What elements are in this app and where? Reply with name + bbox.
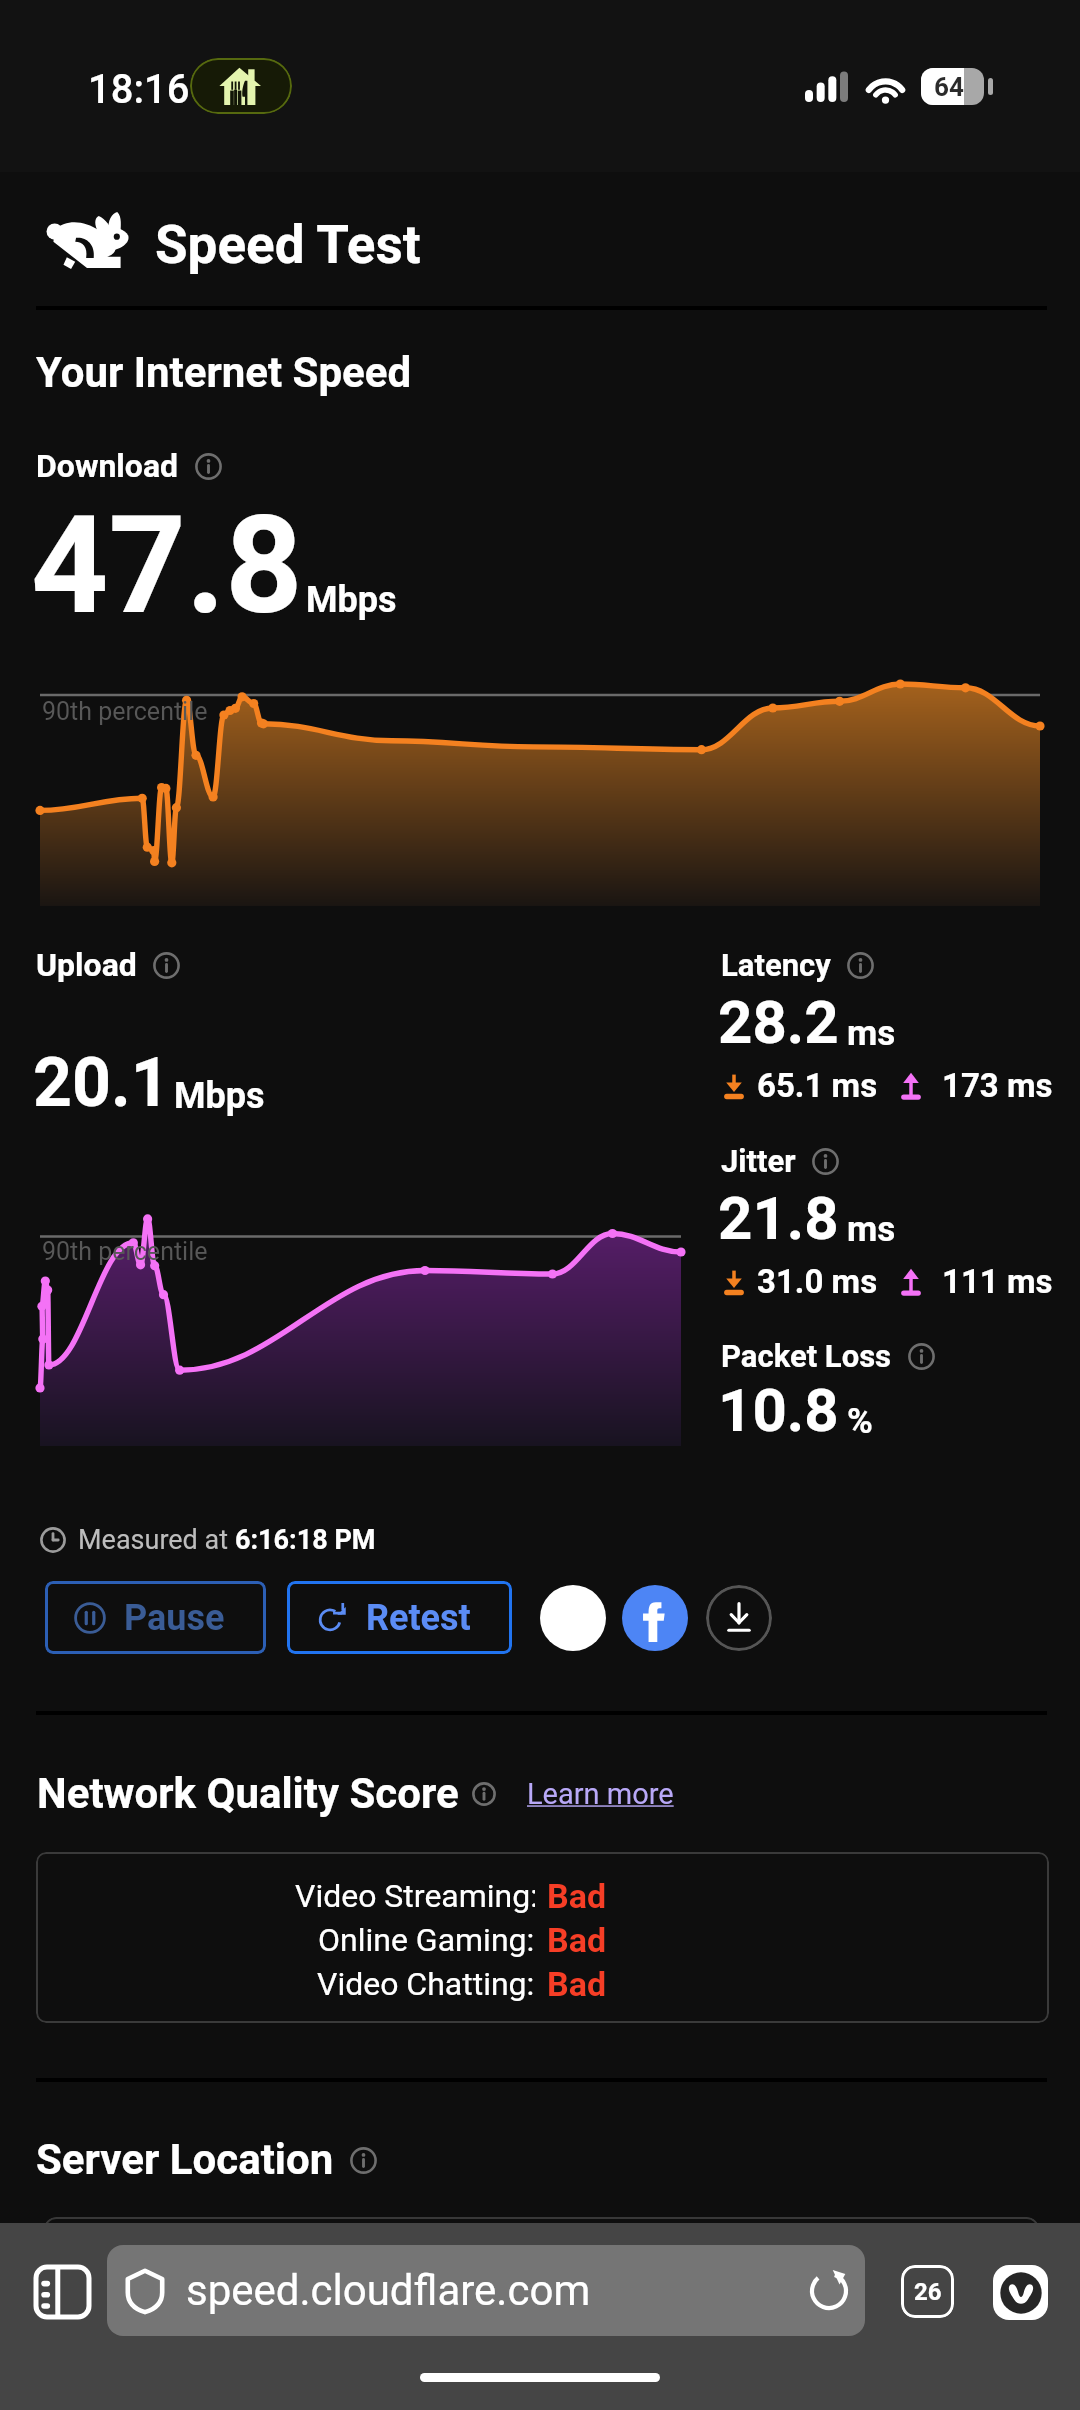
button[interactable]: Panels	[33, 2264, 92, 2320]
button[interactable]: Food delivery	[190, 58, 292, 114]
staticText: Bad	[547, 1876, 607, 1916]
staticText: 6:16:18 PM	[235, 1524, 376, 1556]
button[interactable]: Latency info	[845, 950, 875, 980]
staticText: Mbps	[174, 1075, 265, 1117]
button[interactable]: Download info	[193, 451, 223, 481]
button[interactable]: Share on Facebook	[622, 1585, 688, 1651]
button[interactable]: Pause	[45, 1581, 266, 1654]
staticText: 26	[914, 2278, 942, 2306]
button[interactable]: Vivaldi menu	[993, 2265, 1048, 2320]
staticText: 18:16	[88, 66, 190, 113]
button[interactable]: Jitter info	[810, 1146, 840, 1176]
staticText: 47.8	[31, 487, 303, 645]
button[interactable]: Packet Loss info	[906, 1341, 936, 1371]
staticText: Network Quality Score	[37, 1769, 459, 1818]
staticText: Measured at	[78, 1524, 235, 1556]
staticText: Online Gaming:	[318, 1921, 535, 1959]
staticText: speed.cloudflare.com	[186, 2266, 591, 2315]
button[interactable]: Download results	[706, 1585, 772, 1651]
staticText: ms	[847, 1013, 896, 1054]
staticText: 65.1 ms	[757, 1066, 878, 1105]
staticText: Video Chatting:	[317, 1965, 535, 2003]
button[interactable]: Retest	[287, 1581, 512, 1654]
staticText: 111 ms	[942, 1262, 1053, 1301]
staticText: Speed Test	[155, 214, 421, 276]
staticText: 90th percentile	[42, 697, 208, 726]
staticText: Bad	[547, 1964, 607, 2004]
staticText: 28.2	[718, 987, 839, 1057]
button[interactable]: Server Location info	[348, 2145, 378, 2175]
staticText: Mbps	[306, 579, 397, 621]
staticText: Upload	[36, 946, 137, 984]
staticText: 64	[934, 72, 964, 102]
staticText: 20.1	[33, 1043, 170, 1123]
button[interactable]: Network Quality Score info	[471, 1781, 497, 1807]
staticText: Server Location	[36, 2135, 334, 2184]
button[interactable]: Share on X	[540, 1585, 606, 1651]
staticText: Pause	[124, 1597, 225, 1639]
button[interactable]: Tabs	[901, 2265, 954, 2318]
button[interactable]: speed.cloudflare.com	[107, 2245, 865, 2336]
staticText: Video Streaming:	[295, 1877, 535, 1915]
button[interactable]: Learn more	[527, 1777, 674, 1811]
staticText: Learn more	[527, 1777, 674, 1811]
button[interactable]: Upload info	[151, 950, 181, 980]
staticText: 21.8	[718, 1183, 839, 1253]
staticText: 90th percentile	[42, 1237, 208, 1266]
staticText: Bad	[547, 1920, 607, 1960]
staticText: ms	[847, 1209, 896, 1250]
staticText: Your Internet Speed	[36, 348, 412, 397]
staticText: 31.0 ms	[757, 1262, 878, 1301]
staticText: Jitter	[721, 1143, 796, 1179]
staticText: Packet Loss	[721, 1338, 892, 1374]
staticText: Retest	[366, 1597, 471, 1639]
staticText: %	[847, 1401, 873, 1442]
staticText: Download	[36, 447, 179, 485]
staticText: Latency	[721, 947, 831, 983]
staticText: 10.8	[718, 1375, 839, 1445]
staticText: 173 ms	[942, 1066, 1053, 1105]
